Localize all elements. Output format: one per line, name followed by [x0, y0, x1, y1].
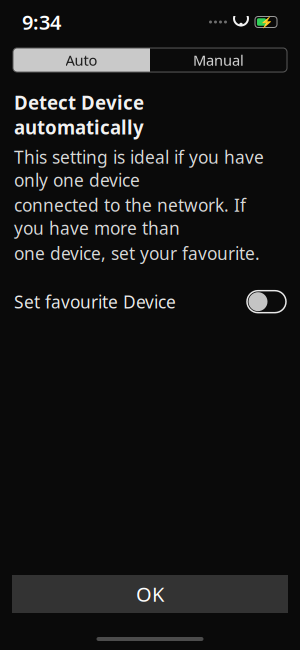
staticText: Auto — [65, 50, 97, 70]
staticText: connected to the network. If you have mo… — [14, 194, 246, 240]
staticText: one device, set your favourite. — [14, 242, 260, 265]
button[interactable]: Manual — [150, 48, 287, 72]
staticText: OK — [136, 581, 164, 607]
button[interactable]: OK — [12, 575, 288, 613]
staticText: 9:34 — [22, 9, 61, 35]
staticText: ⚡ — [259, 16, 272, 28]
button[interactable]: Auto — [13, 48, 150, 72]
staticText: This setting is ideal if you have only o… — [14, 146, 264, 192]
staticText: Manual — [193, 50, 244, 70]
staticText: Set favourite Device — [14, 290, 176, 313]
staticText: Detect Device automatically — [14, 90, 144, 140]
button[interactable]: Set favourite Device — [0, 287, 300, 317]
